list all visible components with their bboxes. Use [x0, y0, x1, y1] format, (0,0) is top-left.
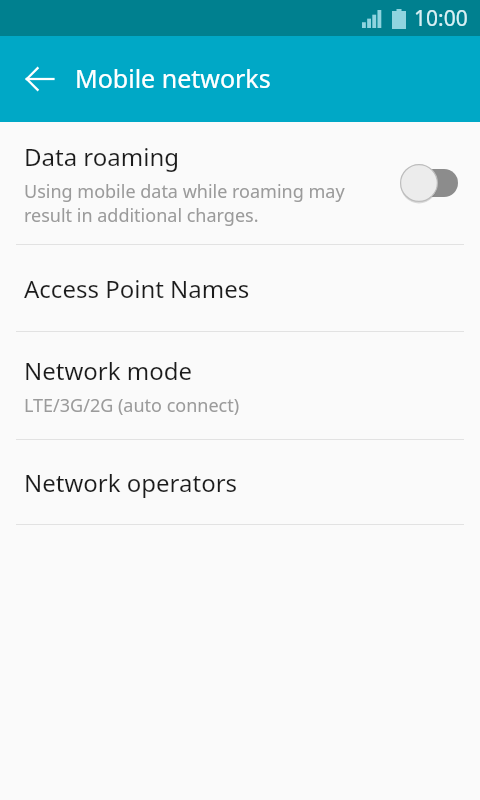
button[interactable]: Access Point Names: [0, 245, 480, 331]
button[interactable]: Data roaming: [0, 122, 480, 244]
button[interactable]: Data roaming toggle: [400, 163, 458, 203]
button[interactable]: Network mode: [0, 332, 480, 439]
staticText: Using mobile data while roaming may resu…: [24, 179, 345, 227]
staticText: Network operators: [24, 466, 238, 499]
button[interactable]: Network operators: [0, 440, 480, 524]
staticText: Data roaming: [24, 140, 179, 173]
staticText: Access Point Names: [24, 272, 250, 305]
staticText: LTE/3G/2G (auto connect): [24, 393, 240, 418]
button[interactable]: Back: [10, 49, 70, 109]
staticText: Mobile networks: [75, 61, 271, 95]
staticText: Network mode: [24, 354, 193, 387]
staticText: 10:00: [414, 4, 468, 33]
